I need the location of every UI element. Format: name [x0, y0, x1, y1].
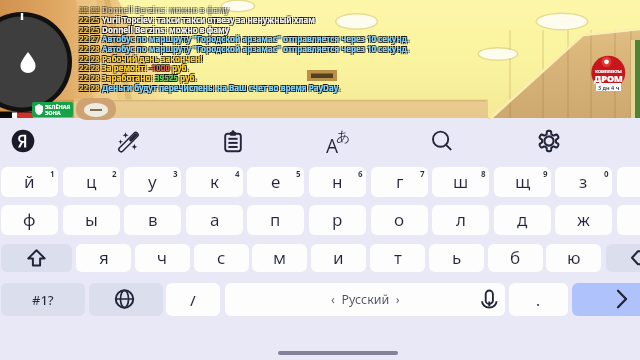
- staticText: 22:25: [79, 24, 100, 35]
- button[interactable]: ‹ Русский ›: [225, 283, 505, 316]
- staticText: Автобус по маршруту "Городской арзамас" …: [101, 32, 411, 43]
- button[interactable]: р: [309, 205, 366, 235]
- staticText: Заработано:: [100, 72, 155, 83]
- button[interactable]: я: [76, 244, 131, 272]
- staticText: 22:28: [79, 53, 100, 64]
- button[interactable]: Translate: [320, 123, 358, 161]
- button[interactable]: Magic wand: [109, 123, 147, 161]
- button[interactable]: з: [555, 167, 612, 197]
- staticText: Yurii Topciev:: [101, 15, 156, 26]
- button[interactable]: ы: [63, 205, 120, 235]
- staticText: Автобус по маршруту "Городской арзамас" …: [99, 44, 409, 55]
- staticText: ЗЕЛЁНАЯ ЗОНА: [45, 103, 71, 117]
- staticText: ц: [86, 170, 97, 193]
- button[interactable]: о: [371, 205, 428, 235]
- button[interactable]: б: [488, 244, 543, 272]
- staticText: 22:28: [78, 71, 99, 82]
- staticText: 22:28: [79, 62, 100, 73]
- staticText: 8: [481, 168, 486, 179]
- button[interactable]: Yandex assistant: [4, 122, 42, 160]
- staticText: 22:25: [78, 25, 99, 36]
- staticText: такси такси отвезу за ненужный хлам: [154, 13, 314, 24]
- button[interactable]: ф: [1, 205, 58, 235]
- staticText: КОМПЛЕКТЫ: [591, 69, 626, 74]
- button[interactable]: ч: [135, 244, 190, 272]
- staticText: 22:28: [80, 63, 101, 74]
- button[interactable]: п: [247, 205, 304, 235]
- staticText: т: [394, 246, 402, 269]
- button[interactable]: г: [371, 167, 428, 197]
- staticText: Деньги будут перечислены на Ваш счет во …: [99, 81, 340, 92]
- staticText: 22:28: [78, 83, 99, 94]
- staticText: 0: [604, 168, 609, 179]
- staticText: и: [333, 246, 344, 269]
- button[interactable]: ь: [429, 244, 484, 272]
- staticText: Рабочий день закончен!: [99, 52, 202, 63]
- staticText: руб.: [169, 61, 188, 72]
- button[interactable]: к: [186, 167, 243, 197]
- staticText: о: [394, 208, 405, 231]
- staticText: 22:25: [80, 25, 101, 36]
- staticText: Деньги будут перечислены на Ваш счет во …: [100, 82, 341, 93]
- staticText: л: [456, 208, 466, 231]
- button[interactable]: у: [124, 167, 181, 197]
- staticText: 3 дн 4 ч: [598, 84, 620, 91]
- staticText: 22:27: [78, 32, 99, 43]
- button[interactable]: и: [311, 244, 366, 272]
- button[interactable]: с: [194, 244, 249, 272]
- staticText: Yurii Topciev:: [99, 15, 154, 26]
- button[interactable]: Change language: [89, 283, 163, 316]
- staticText: можно в фаму: [166, 25, 229, 36]
- staticText: 39525: [154, 73, 177, 84]
- staticText: -1000: [148, 63, 169, 74]
- staticText: руб.: [170, 62, 189, 73]
- button[interactable]: й: [1, 167, 58, 197]
- button[interactable]: ш: [432, 167, 489, 197]
- button[interactable]: ж: [555, 205, 612, 235]
- button[interactable]: т: [370, 244, 425, 272]
- staticText: Donnell Berzins:: [101, 3, 168, 14]
- staticText: Donnell Berzins:: [101, 23, 168, 34]
- button[interactable]: а: [186, 205, 243, 235]
- staticText: Автобус по маршруту "Городской арзамас" …: [101, 34, 411, 45]
- button[interactable]: /: [166, 283, 220, 316]
- button[interactable]: Settings: [530, 122, 568, 160]
- button[interactable]: д: [494, 205, 551, 235]
- staticText: Рабочий день закончен!: [101, 54, 204, 65]
- staticText: Рабочий день закончен!: [101, 52, 204, 63]
- staticText: Donnell Berzins:: [101, 25, 168, 36]
- button[interactable]: ю: [546, 244, 601, 272]
- button[interactable]: в: [124, 205, 181, 235]
- staticText: -1000: [149, 62, 170, 73]
- button[interactable]: Shift: [1, 244, 72, 272]
- button[interactable]: Backspace: [606, 244, 640, 272]
- staticText: За ремонт:: [99, 61, 148, 72]
- staticText: За ремонт:: [101, 61, 150, 72]
- button[interactable]: #1?: [1, 283, 85, 316]
- button[interactable]: .: [509, 283, 568, 316]
- button[interactable]: ц: [63, 167, 120, 197]
- button[interactable]: Clipboard: [214, 123, 252, 161]
- button[interactable]: е: [247, 167, 304, 197]
- staticText: 4: [235, 168, 240, 179]
- button[interactable]: Enter: [572, 283, 640, 316]
- staticText: A: [326, 133, 339, 159]
- staticText: Yurii Topciev:: [99, 13, 154, 24]
- staticText: 22:28: [80, 83, 101, 94]
- staticText: 5: [296, 168, 301, 179]
- button[interactable]: Search: [422, 122, 460, 160]
- staticText: р: [332, 208, 343, 231]
- staticText: 39525: [155, 72, 178, 83]
- button[interactable]: м: [252, 244, 307, 272]
- button[interactable]: щ: [494, 167, 551, 197]
- staticText: Рабочий день закончен!: [100, 53, 203, 64]
- staticText: 3: [173, 168, 178, 179]
- staticText: Donnell Berzins:: [99, 5, 166, 16]
- staticText: 7: [420, 168, 425, 179]
- staticText: Заработано:: [99, 73, 154, 84]
- button[interactable]: л: [432, 205, 489, 235]
- button[interactable]: н: [309, 167, 366, 197]
- staticText: .: [536, 290, 541, 310]
